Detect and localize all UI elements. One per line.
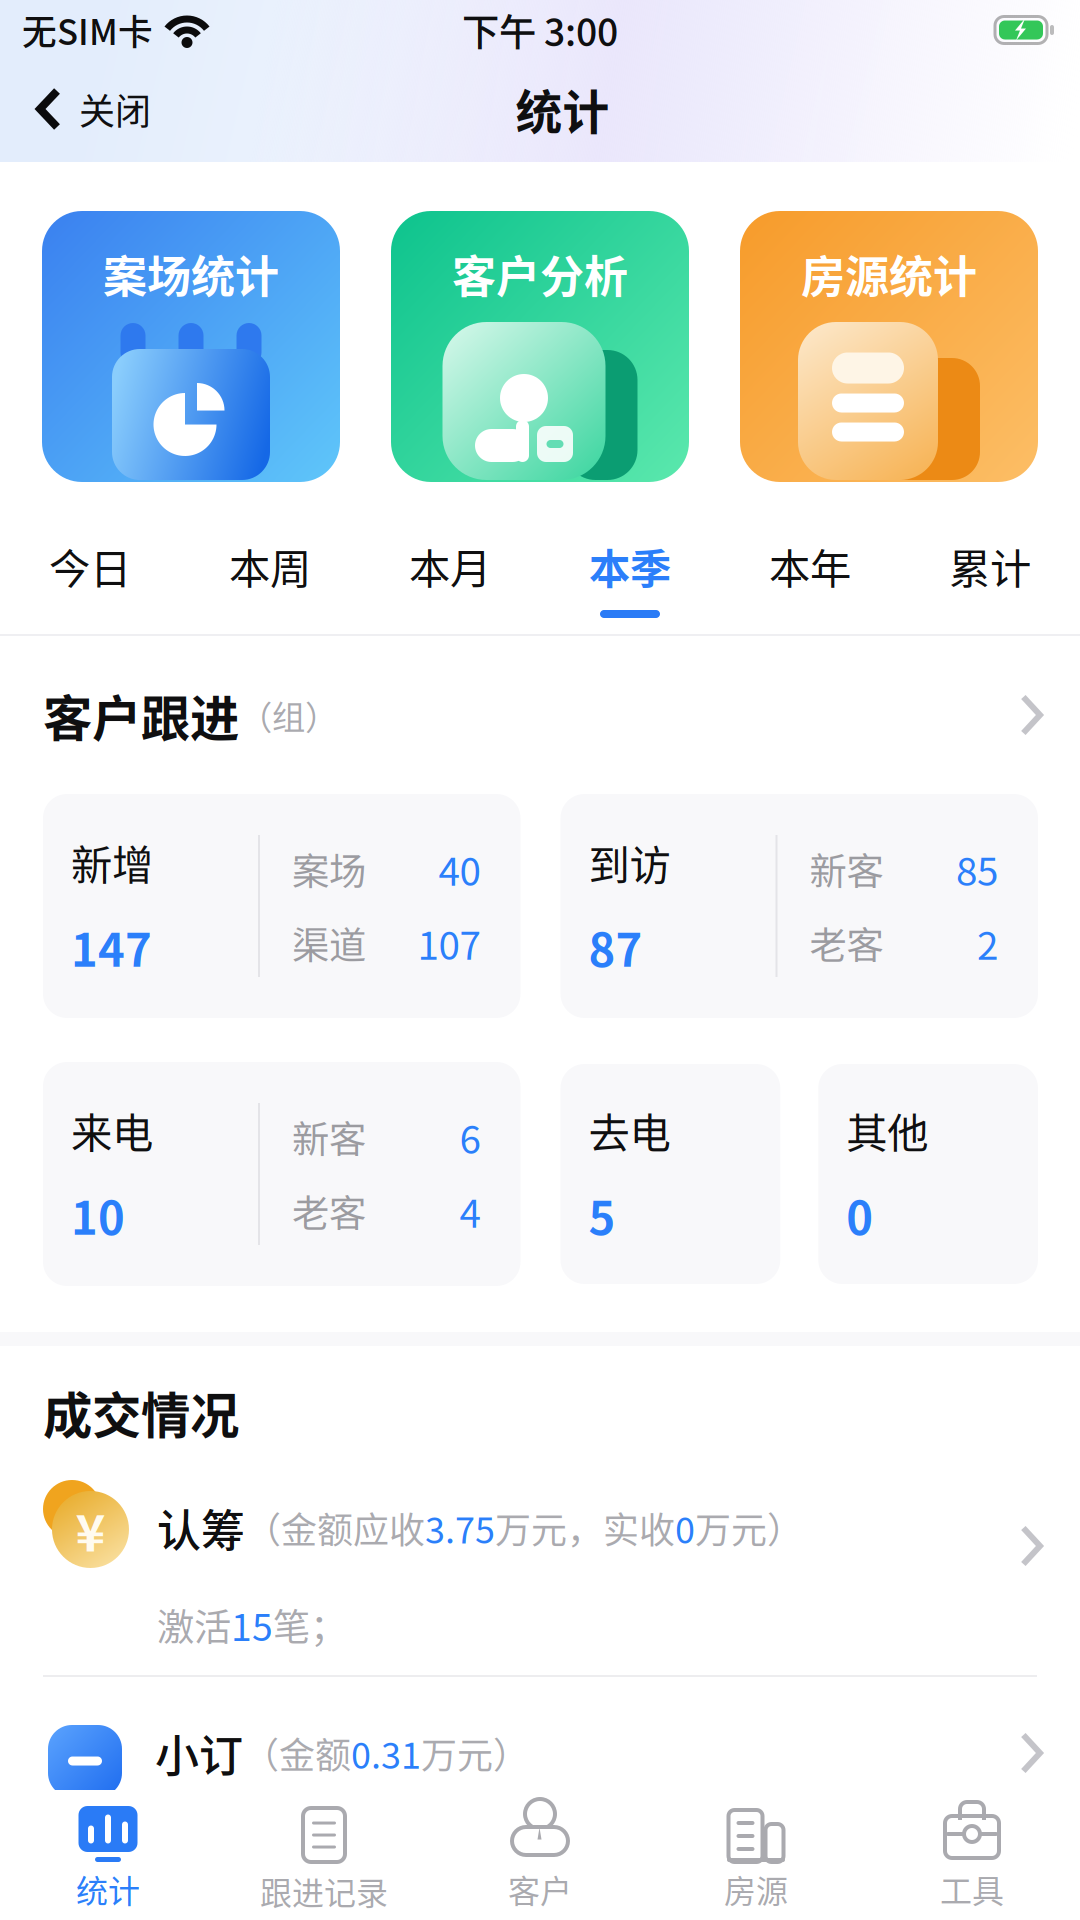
staticText: 到访: [588, 832, 670, 892]
staticText: 关闭: [79, 83, 151, 135]
staticText: （组）: [239, 691, 338, 739]
button[interactable]: ¥: [0, 1478, 1080, 1675]
staticText: 无SIM卡: [22, 5, 153, 55]
staticText: 认筹: [157, 1496, 245, 1560]
button[interactable]: 房源统计: [740, 211, 1038, 482]
staticText: 6: [459, 1109, 480, 1165]
staticText: 累计: [949, 536, 1031, 596]
staticText: 新增: [71, 832, 153, 892]
staticText: 案场: [292, 842, 366, 896]
staticText: 下午 3:00: [462, 3, 618, 57]
staticText: 工具: [940, 1866, 1004, 1912]
staticText: 87: [588, 914, 642, 980]
staticText: 统计: [76, 1866, 140, 1912]
button[interactable]: 工具: [864, 1790, 1080, 1920]
staticText: 今日: [49, 536, 131, 596]
button[interactable]: 本季: [540, 516, 720, 634]
button[interactable]: 客户分析: [391, 211, 689, 482]
staticText: 老客: [809, 916, 883, 970]
staticText: 新客: [292, 1110, 366, 1164]
staticText: 小订: [155, 1721, 243, 1785]
staticText: 老客: [292, 1184, 366, 1238]
staticText: 40: [438, 841, 480, 897]
staticText: （金额应收: [245, 1502, 425, 1554]
button[interactable]: 案场统计: [42, 211, 340, 482]
button[interactable]: 跟进记录: [216, 1790, 432, 1920]
button[interactable]: 客户跟进: [0, 636, 1080, 794]
staticText: 笔；: [273, 1598, 347, 1652]
staticText: 本季: [589, 536, 671, 596]
staticText: 客户分析: [452, 242, 628, 306]
button[interactable]: 累计: [900, 516, 1080, 634]
staticText: 成交情况: [43, 1376, 239, 1448]
staticText: 房源: [724, 1866, 788, 1912]
staticText: 2: [977, 915, 998, 971]
button[interactable]: 本周: [180, 516, 360, 634]
staticText: （金额: [243, 1727, 351, 1779]
staticText: 85: [956, 841, 998, 897]
staticText: 本年: [769, 536, 851, 596]
button[interactable]: 关闭: [0, 60, 171, 158]
staticText: 客户跟进: [43, 679, 239, 751]
staticText: 统计: [515, 75, 609, 143]
staticText: 本月: [409, 536, 491, 596]
button[interactable]: 房源: [648, 1790, 864, 1920]
staticText: 0: [675, 1502, 695, 1554]
button[interactable]: 客户: [432, 1790, 648, 1920]
staticText: 107: [417, 915, 480, 971]
staticText: 万元，实收: [495, 1502, 675, 1554]
staticText: 3.75: [425, 1502, 495, 1554]
staticText: 去电: [588, 1100, 670, 1160]
staticText: 147: [71, 914, 152, 980]
staticText: 来电: [71, 1100, 153, 1160]
staticText: 万元）: [695, 1502, 803, 1554]
staticText: 其他: [846, 1100, 928, 1160]
staticText: 案场统计: [103, 242, 279, 306]
staticText: 房源统计: [801, 242, 977, 306]
staticText: 本周: [229, 536, 311, 596]
staticText: ¥: [75, 1493, 105, 1566]
staticText: 跟进记录: [260, 1868, 388, 1914]
staticText: 万元）: [421, 1727, 529, 1779]
staticText: 4: [459, 1183, 480, 1239]
button[interactable]: 本月: [360, 516, 540, 634]
staticText: 15: [231, 1598, 273, 1652]
staticText: 0: [846, 1182, 873, 1248]
staticText: 10: [71, 1182, 125, 1248]
button[interactable]: 今日: [0, 516, 180, 634]
staticText: 新客: [809, 842, 883, 896]
staticText: 激活: [157, 1598, 231, 1652]
staticText: 渠道: [292, 916, 366, 970]
button[interactable]: 统计: [0, 1790, 216, 1920]
staticText: 5: [588, 1182, 615, 1248]
staticText: 0.31: [351, 1727, 421, 1779]
button[interactable]: 小订: [0, 1677, 1080, 1829]
staticText: 客户: [508, 1866, 572, 1912]
button[interactable]: 本年: [720, 516, 900, 634]
